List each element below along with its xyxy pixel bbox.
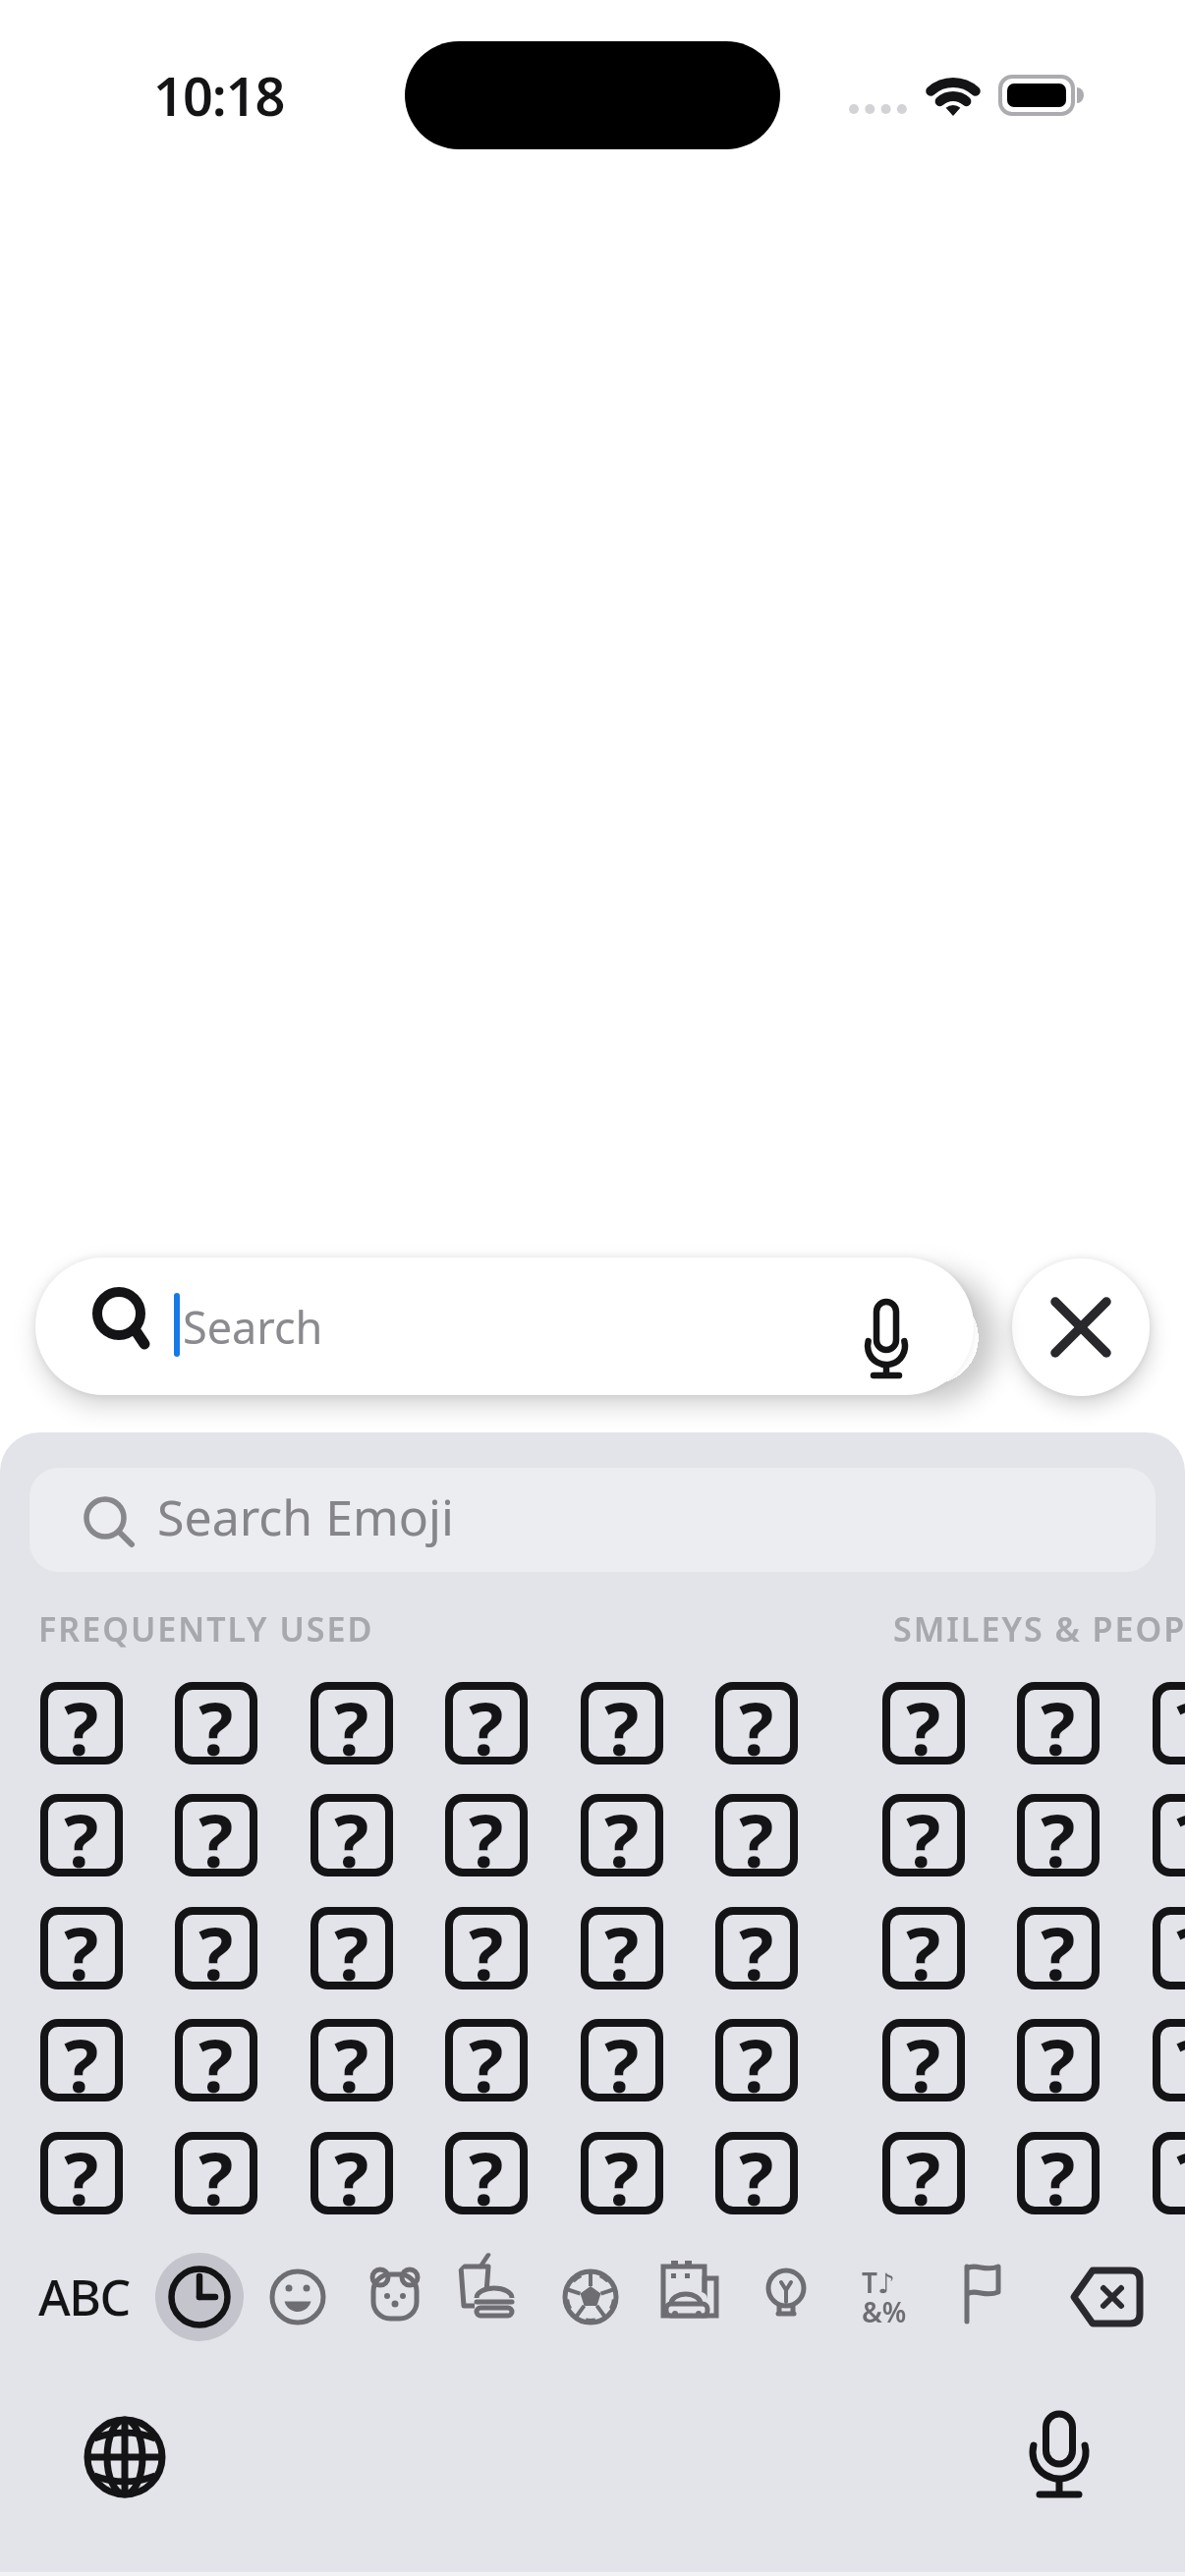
staticText: ? [1041, 2015, 1076, 2098]
button[interactable]: ? [310, 2132, 393, 2214]
button[interactable]: Search Emoji [29, 1468, 1156, 1572]
staticText: Search [183, 1297, 323, 1357]
button[interactable]: ? [715, 1682, 798, 1764]
button[interactable] [155, 2253, 244, 2341]
button[interactable]: ? [581, 1907, 663, 1989]
staticText: Search Emoji [157, 1484, 454, 1550]
staticText: ? [1176, 1790, 1185, 1873]
button[interactable]: ABC [29, 2260, 138, 2334]
staticText: 10:18 [153, 59, 285, 132]
button[interactable]: ? [445, 1907, 528, 1989]
button[interactable]: ? [40, 2132, 123, 2214]
button[interactable]: ? [40, 1907, 123, 1989]
staticText: ? [604, 1790, 640, 1873]
button[interactable]: ? [882, 2132, 965, 2214]
staticText: ? [739, 2015, 774, 2098]
button[interactable]: ? [581, 2019, 663, 2101]
staticText: ? [469, 1790, 504, 1873]
button[interactable] [1012, 1259, 1150, 1396]
staticText: ? [906, 1678, 941, 1761]
button[interactable]: ? [445, 1794, 528, 1876]
button[interactable]: ? [1017, 2132, 1100, 2214]
button[interactable]: ? [1153, 2019, 1185, 2101]
staticText: ? [739, 1678, 774, 1761]
button[interactable]: ? [1153, 1907, 1185, 1989]
staticText: ? [604, 1903, 640, 1986]
button[interactable]: ? [310, 1794, 393, 1876]
button[interactable]: ? [175, 1907, 257, 1989]
button[interactable]: T♪ &% [840, 2253, 929, 2341]
staticText: ? [1041, 2128, 1076, 2211]
staticText: ? [198, 1678, 234, 1761]
button[interactable]: ? [715, 2132, 798, 2214]
button[interactable] [546, 2253, 635, 2341]
button[interactable]: ? [1017, 1794, 1100, 1876]
staticText: ? [739, 1903, 774, 1986]
staticText: ? [739, 2128, 774, 2211]
button[interactable] [645, 2253, 733, 2341]
button[interactable]: ? [882, 1794, 965, 1876]
button[interactable]: ? [1017, 1682, 1100, 1764]
button[interactable]: ? [1017, 2019, 1100, 2101]
staticText: ? [1041, 1903, 1076, 1986]
staticText: ? [1041, 1790, 1076, 1873]
button[interactable] [81, 2413, 169, 2501]
button[interactable]: ? [715, 2019, 798, 2101]
button[interactable]: ? [445, 1682, 528, 1764]
button[interactable]: ? [715, 1907, 798, 1989]
button[interactable]: ? [882, 1682, 965, 1764]
button[interactable] [1012, 2402, 1106, 2505]
button[interactable]: ? [175, 2019, 257, 2101]
button[interactable] [1066, 2260, 1151, 2334]
staticText: ? [1176, 1903, 1185, 1986]
button[interactable]: ? [1153, 1794, 1185, 1876]
button[interactable]: ? [175, 1682, 257, 1764]
button[interactable] [742, 2253, 830, 2341]
staticText: ? [469, 1678, 504, 1761]
staticText: ? [64, 1678, 99, 1761]
button[interactable]: ? [882, 2019, 965, 2101]
button[interactable]: ? [310, 1907, 393, 1989]
button[interactable]: ? [445, 2132, 528, 2214]
button[interactable]: ? [581, 2132, 663, 2214]
button[interactable]: ? [40, 1682, 123, 1764]
staticText: ? [469, 1903, 504, 1986]
staticText: ? [334, 2128, 369, 2211]
button[interactable]: ? [40, 2019, 123, 2101]
button[interactable]: ? [310, 1682, 393, 1764]
staticText: ? [604, 1678, 640, 1761]
staticText: ? [64, 1903, 99, 1986]
button[interactable]: ? [445, 2019, 528, 2101]
button[interactable]: ? [1017, 1907, 1100, 1989]
staticText: SMILEYS & PEOPLE [893, 1606, 1185, 1652]
button[interactable]: ? [1153, 1682, 1185, 1764]
staticText: ? [604, 2015, 640, 2098]
staticText: ? [1176, 2015, 1185, 2098]
button[interactable]: ? [581, 1682, 663, 1764]
button[interactable]: Search [35, 1258, 974, 1395]
staticText: ? [198, 1903, 234, 1986]
button[interactable]: ? [1153, 2132, 1185, 2214]
button[interactable]: ? [882, 1907, 965, 1989]
button[interactable]: ? [715, 1794, 798, 1876]
staticText: ? [469, 2128, 504, 2211]
button[interactable] [449, 2253, 537, 2341]
staticText: ? [334, 1790, 369, 1873]
staticText: ? [64, 1790, 99, 1873]
staticText: FREQUENTLY USED [38, 1606, 374, 1652]
button[interactable]: ? [175, 1794, 257, 1876]
button[interactable]: ? [175, 2132, 257, 2214]
button[interactable]: ? [581, 1794, 663, 1876]
staticText: ? [469, 2015, 504, 2098]
staticText: ? [64, 2015, 99, 2098]
staticText: ? [334, 2015, 369, 2098]
staticText: ? [334, 1903, 369, 1986]
staticText: ABC [38, 2264, 130, 2330]
button[interactable] [351, 2253, 439, 2341]
staticText: ? [906, 1790, 941, 1873]
staticText: ? [64, 2128, 99, 2211]
button[interactable]: ? [40, 1794, 123, 1876]
button[interactable]: ? [310, 2019, 393, 2101]
button[interactable] [254, 2253, 342, 2341]
button[interactable] [937, 2253, 1026, 2341]
